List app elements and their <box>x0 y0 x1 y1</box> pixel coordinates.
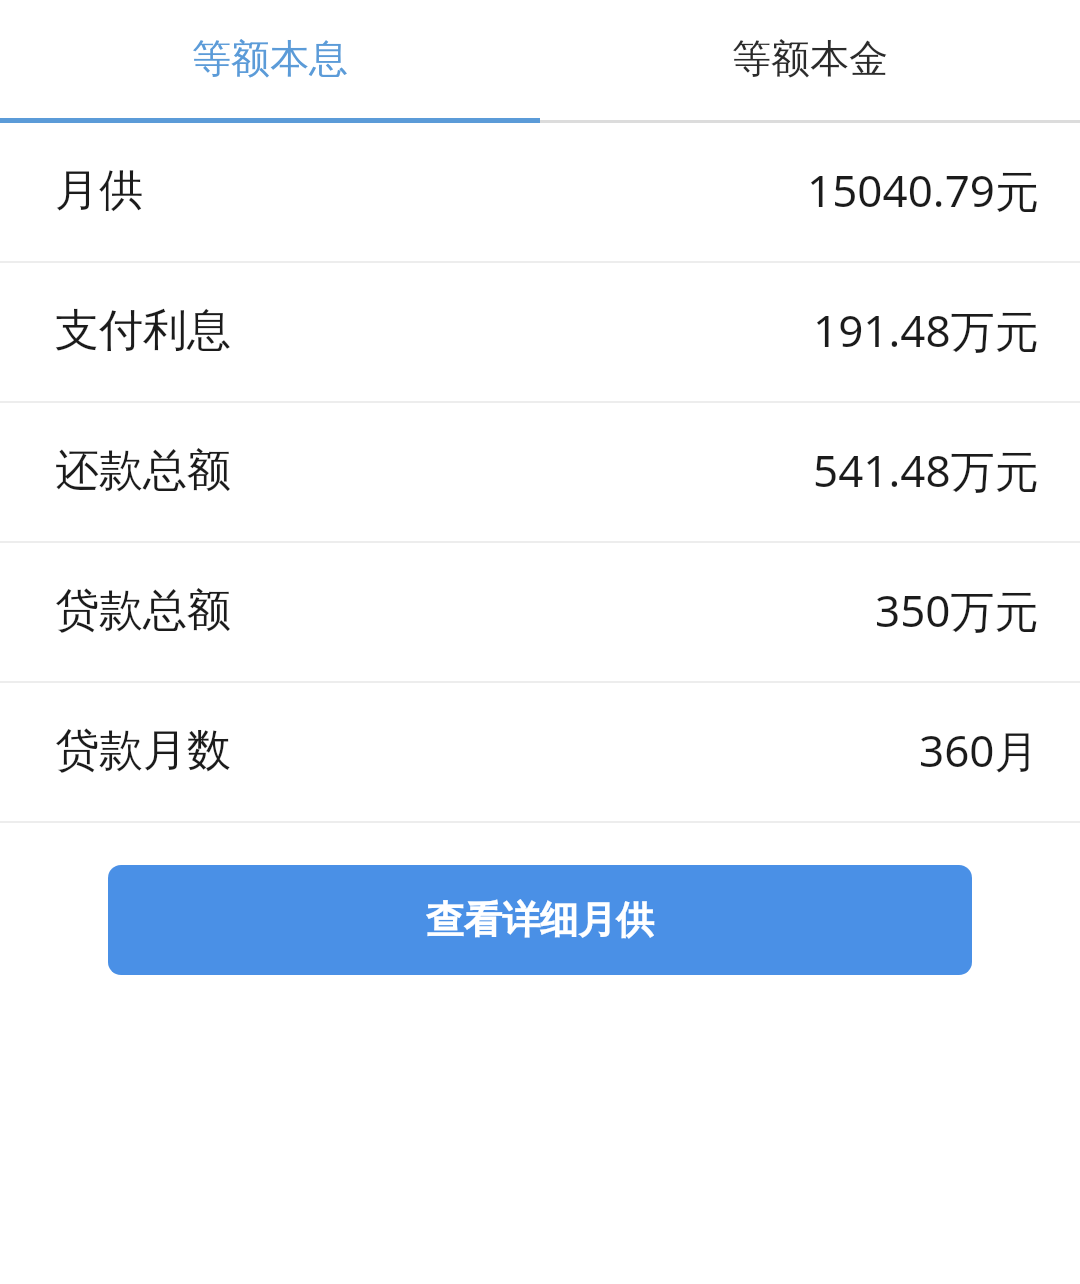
staticText: 还款总额 <box>55 443 231 498</box>
staticText: 贷款月数 <box>55 723 231 778</box>
staticText: 350万元 <box>875 580 1039 640</box>
staticText: 等额本息 <box>192 34 348 83</box>
button[interactable]: 月供 <box>0 123 1080 263</box>
staticText: 支付利息 <box>55 303 231 358</box>
button[interactable]: 等额本金 <box>540 0 1080 123</box>
button[interactable]: 还款总额 <box>0 403 1080 543</box>
staticText: 等额本金 <box>732 34 888 83</box>
staticText: 月供 <box>55 163 143 218</box>
staticText: 191.48万元 <box>813 300 1039 360</box>
button[interactable]: 贷款总额 <box>0 543 1080 683</box>
staticText: 15040.79元 <box>807 160 1039 220</box>
staticText: 541.48万元 <box>813 440 1039 500</box>
button[interactable]: 查看详细月供 <box>108 865 972 975</box>
button[interactable]: 等额本息 <box>0 0 540 123</box>
button[interactable]: 支付利息 <box>0 263 1080 403</box>
staticText: 查看详细月供 <box>426 896 654 944</box>
staticText: 贷款总额 <box>55 583 231 638</box>
staticText: 360月 <box>919 720 1039 780</box>
button[interactable]: 贷款月数 <box>0 683 1080 823</box>
